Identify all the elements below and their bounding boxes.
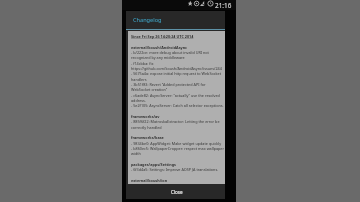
other: Status icons (188, 1, 214, 6)
staticText: https://github.com/koush/AndroidAsync/is… (131, 66, 222, 71)
staticText: Close (171, 189, 183, 195)
staticText: - 5675a4a: expose initial http request t… (131, 71, 221, 76)
staticText: - b/222ce: more debug about invalid URI … (131, 50, 209, 55)
staticText: width (131, 151, 141, 156)
staticText: - 9834be0: AppWidget: Make widget update… (131, 141, 222, 146)
staticText: - 3b51f83: Revert "Added protected API f… (131, 82, 206, 87)
staticText: address. (131, 98, 146, 103)
staticText: frameworks/base (131, 135, 164, 140)
staticText: - f14cbba: fix (131, 61, 154, 66)
staticText: WebSocket creation" (131, 87, 168, 92)
staticText: - b860ec5: WallpaperCropper: respect max… (131, 146, 225, 151)
staticText: correctly handled (131, 125, 162, 130)
staticText: - 5e2f105: AsyncServer: Catch all select… (131, 103, 224, 108)
staticText: - c6ade82: AsyncServer: "actually" use t… (131, 93, 220, 98)
staticText: - 6f3d4a5: Settings: Improve AOSP JA tra… (131, 167, 219, 172)
staticText: recognized by any middleware (131, 55, 185, 60)
staticText: Since Fri Sep 26 14:20:24 UTC 2014 (131, 34, 194, 39)
staticText: packages/apps/Settings (131, 162, 176, 167)
staticText: Changelog (133, 16, 162, 24)
staticText: external/koush/ion (131, 178, 168, 183)
staticText: handlers (131, 77, 147, 82)
staticText: 21:16 (215, 1, 232, 10)
staticText: frameworks/av (131, 114, 160, 119)
button[interactable]: Close (126, 184, 225, 199)
staticText: - 885f6f22: MatroskaExtractor: Letting t… (131, 119, 220, 124)
staticText: external/koush/AndroidAsync (131, 45, 188, 50)
